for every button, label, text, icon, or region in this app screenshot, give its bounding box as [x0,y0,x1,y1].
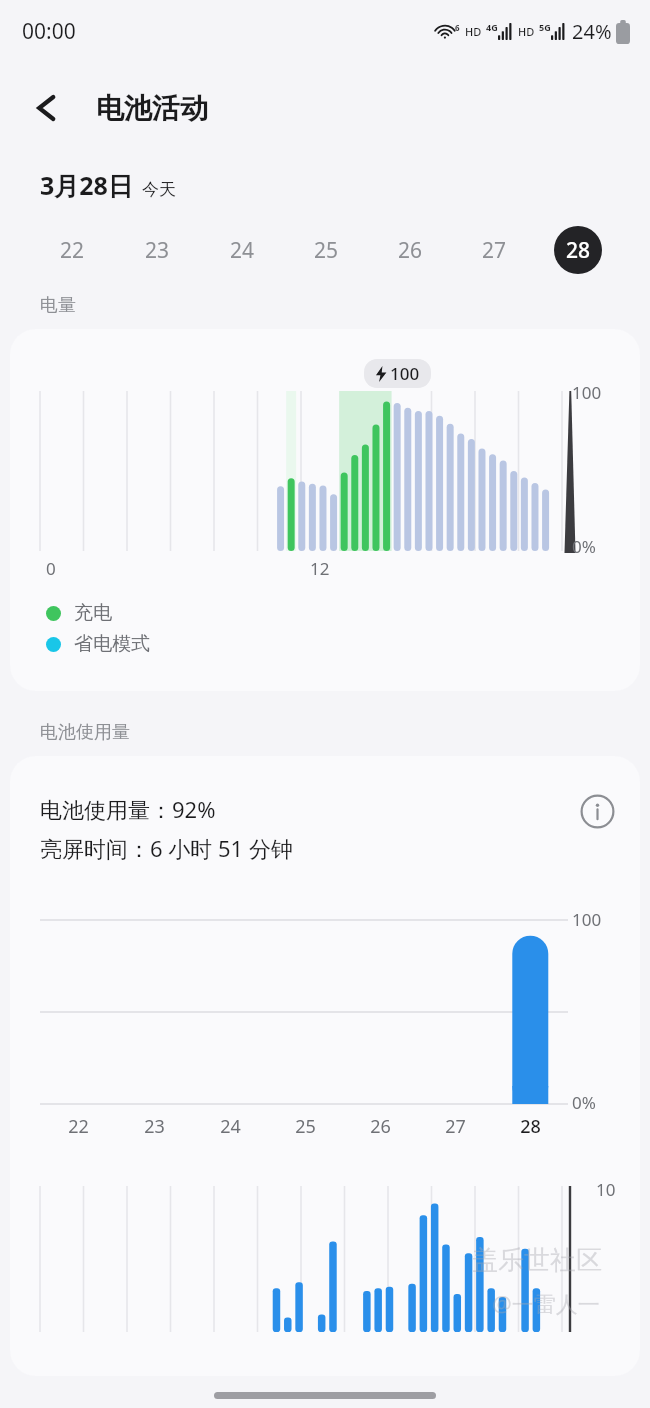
staticText: 省电模式 [74,632,150,656]
staticText: 26 [370,1114,391,1139]
staticText: 电池使用量 [40,721,130,744]
staticText: 10 [596,1178,616,1201]
staticText: 电池活动 [96,91,208,126]
staticText: 23 [144,1114,165,1139]
staticText: 22 [68,1114,89,1139]
button[interactable]: 电池使用量：92% [10,756,640,1376]
staticText: 100 [572,908,602,931]
staticText: 22 [60,236,85,265]
staticText: 电池使用量：92% [40,794,216,824]
staticText: 5G [539,21,551,33]
staticText: 25 [314,236,339,265]
staticText: 充电 [74,601,112,625]
button[interactable]: 27 [452,224,536,276]
staticText: 23 [145,236,170,265]
staticText: 28 [566,236,591,265]
button[interactable]: 26 [368,224,452,276]
staticText: 3月28日 [40,168,133,202]
button[interactable]: 28 [536,224,620,276]
staticText: 28 [520,1114,541,1139]
staticText: 4G [486,21,498,33]
staticText: 0% [572,1091,596,1114]
button[interactable]: 24 [200,224,284,276]
staticText: HD [465,24,482,39]
staticText: 6 [455,22,460,33]
staticText: @一雷人一 [492,1288,600,1318]
staticText: 24 [220,1114,241,1139]
staticText: 0 [46,557,56,580]
button[interactable]: Back [26,86,70,130]
staticText: 100 [390,362,420,385]
staticText: 27 [482,236,507,265]
staticText: 盖乐世社区 [472,1244,602,1277]
staticText: 0% [572,535,596,558]
staticText: 27 [445,1114,466,1139]
staticText: 26 [398,236,423,265]
button[interactable]: 100 [10,329,640,691]
button[interactable]: 22 [30,224,115,276]
button[interactable]: 25 [284,224,368,276]
staticText: 24 [230,236,255,265]
button[interactable]: 23 [115,224,200,276]
staticText: 电量 [40,294,76,317]
staticText: 25 [295,1114,316,1139]
staticText: 12 [310,557,330,580]
staticText: 24% [572,18,612,45]
staticText: 100 [572,381,602,404]
staticText: 亮屏时间：6 小时 51 分钟 [40,833,293,863]
staticText: 00:00 [22,17,76,46]
button[interactable]: Info [574,788,620,834]
staticText: 今天 [142,179,176,200]
staticText: HD [518,24,535,39]
